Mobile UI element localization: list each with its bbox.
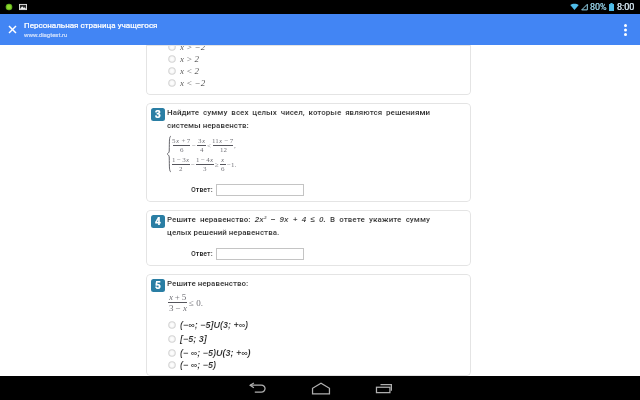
staticText: 6: [221, 165, 225, 173]
staticText: −: [191, 161, 195, 169]
button[interactable]: [−5; 3]: [168, 332, 471, 346]
staticText: 3 −: [169, 303, 183, 313]
staticText: − 7: [223, 137, 234, 145]
staticText: x > 2: [180, 54, 200, 64]
staticText: Решите неравенство: 2x² − 9x + 4 ≤ 0. В …: [167, 215, 430, 237]
button[interactable]: x < −2: [168, 77, 471, 89]
button[interactable]: More options: [610, 15, 640, 45]
staticText: + 5: [173, 292, 187, 302]
staticText: 2: [179, 165, 183, 173]
staticText: [−5; 3]: [180, 334, 207, 344]
staticText: 5: [155, 280, 161, 292]
staticText: 8:00: [617, 2, 635, 13]
staticText: Персональная страница учащегося: [24, 21, 158, 30]
staticText: 11: [212, 137, 219, 145]
button[interactable]: Back: [226, 376, 289, 400]
staticText: ≤ 0.: [189, 298, 203, 308]
staticText: 3: [198, 137, 202, 145]
staticText: −1.: [227, 161, 237, 169]
staticText: 12: [220, 146, 227, 154]
button[interactable]: Recent apps: [352, 376, 415, 400]
button[interactable]: Home: [289, 376, 352, 400]
staticText: (− ∞; −5): [180, 360, 216, 370]
staticText: x: [186, 156, 190, 164]
staticText: + 7: [180, 137, 191, 145]
staticText: x: [169, 292, 173, 302]
staticText: <: [207, 142, 211, 150]
staticText: x < −2: [180, 78, 206, 88]
staticText: x: [176, 137, 180, 145]
staticText: 3: [155, 109, 161, 121]
staticText: x: [183, 303, 187, 313]
button[interactable]: [216, 184, 304, 196]
staticText: 5: [172, 137, 176, 145]
staticText: 6: [180, 146, 184, 154]
button[interactable]: x > −2: [168, 45, 471, 53]
button[interactable]: x > 2: [168, 53, 471, 65]
staticText: 3: [203, 165, 207, 173]
staticText: 4: [155, 216, 161, 228]
staticText: x: [219, 137, 223, 145]
staticText: x > −2: [180, 45, 206, 52]
staticText: Решите неравенство:: [167, 279, 249, 288]
staticText: Ответ:: [191, 186, 213, 194]
button[interactable]: (− ∞; −5)U(3; +∞): [168, 346, 471, 360]
staticText: 1 − 4: [196, 156, 210, 164]
staticText: ,: [234, 142, 236, 150]
button[interactable]: (−∞; −5]U(3; +∞): [168, 318, 471, 332]
staticText: 1 − 3: [172, 156, 186, 164]
staticText: x < 2: [180, 66, 200, 76]
staticText: x: [221, 156, 225, 164]
staticText: Ответ:: [191, 250, 213, 258]
staticText: ≥: [215, 161, 219, 169]
button[interactable]: Close: [0, 14, 25, 45]
staticText: x: [202, 137, 206, 145]
staticText: Найдите сумму всех целых чисел, которые …: [167, 108, 430, 130]
staticText: (− ∞; −5)U(3; +∞): [180, 348, 251, 358]
staticText: −: [192, 142, 196, 150]
staticText: 4: [200, 146, 204, 154]
staticText: x: [210, 156, 214, 164]
staticText: www.diagtest.ru: [24, 31, 68, 38]
staticText: 80%: [590, 2, 607, 13]
staticText: (−∞; −5]U(3; +∞): [180, 320, 249, 330]
button[interactable]: x < 2: [168, 65, 471, 77]
button[interactable]: [216, 248, 304, 260]
button[interactable]: (− ∞; −5): [168, 360, 471, 370]
